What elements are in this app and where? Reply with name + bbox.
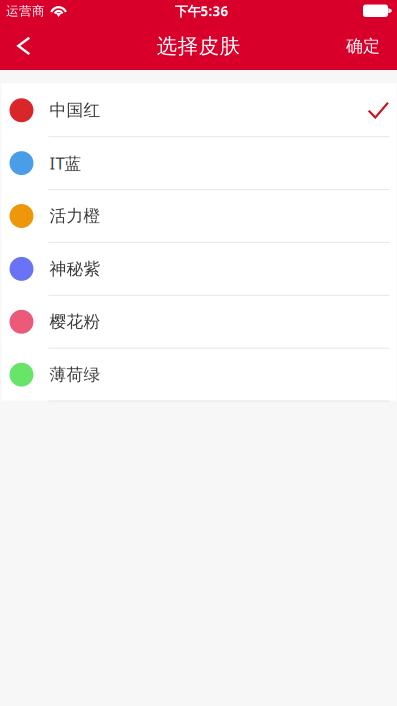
staticText: 薄荷绿 [49, 364, 100, 385]
staticText: 确定 [346, 35, 380, 57]
button[interactable]: 薄荷绿 [1, 348, 396, 401]
button[interactable]: IT蓝 [1, 136, 396, 189]
staticText: 选择皮肤 [156, 33, 240, 59]
staticText: 运营商 [6, 3, 45, 19]
staticText: 神秘紫 [49, 258, 100, 279]
staticText: 活力橙 [49, 205, 100, 226]
button[interactable]: 樱花粉 [1, 295, 396, 348]
button[interactable]: 确定 [327, 22, 397, 70]
button[interactable]: 中国红 [1, 83, 396, 136]
staticText: 下午5:36 [174, 2, 228, 20]
staticText: 樱花粉 [49, 311, 100, 332]
button[interactable]: 活力橙 [1, 189, 396, 242]
staticText: IT蓝 [49, 152, 81, 174]
staticText: 中国红 [49, 100, 100, 121]
button[interactable]: 返回 [0, 22, 56, 70]
button[interactable]: 神秘紫 [1, 242, 396, 295]
